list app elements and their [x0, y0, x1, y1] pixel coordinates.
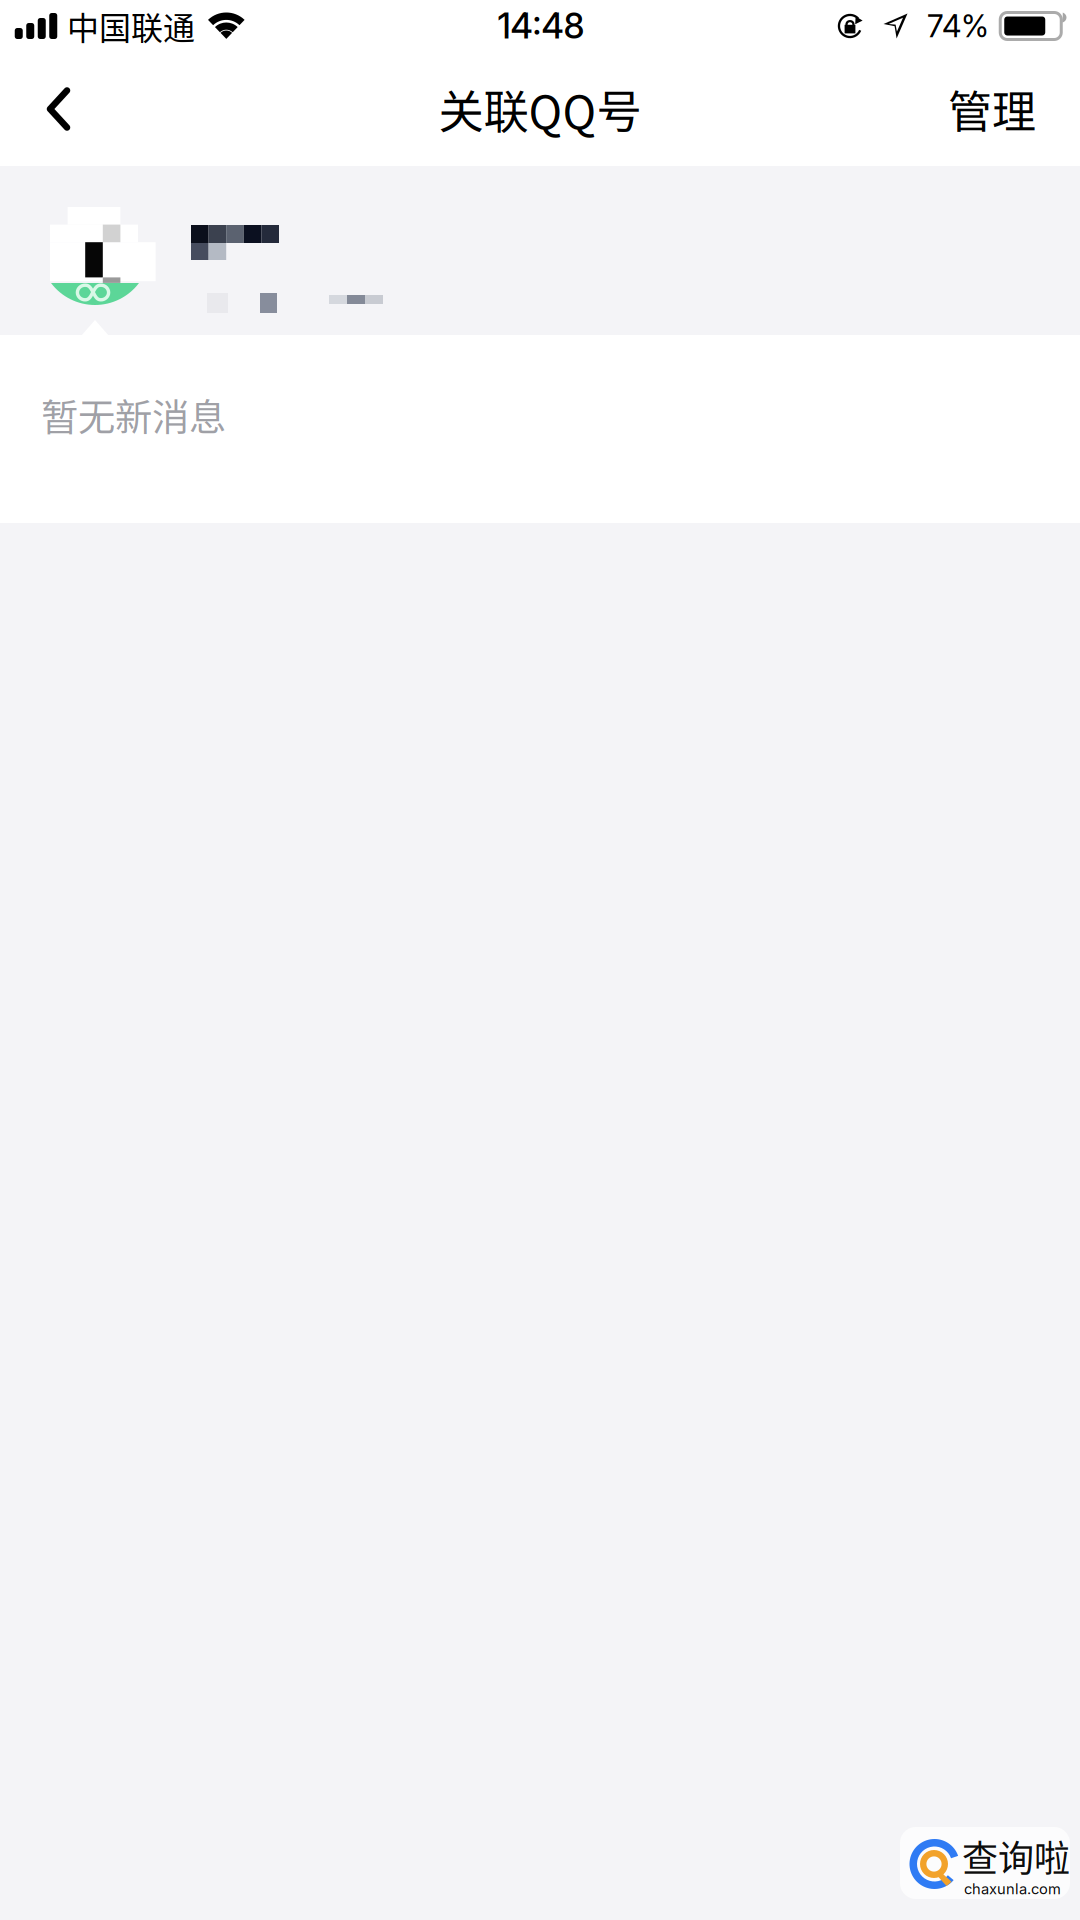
button[interactable] — [0, 166, 1080, 335]
button[interactable]: 暂无新消息 — [0, 335, 1080, 523]
staticText: 14:48 — [497, 5, 584, 47]
staticText: 查询啦 — [962, 1830, 1070, 1882]
staticText: 中国联通 — [67, 3, 195, 49]
button[interactable]: 管理 — [914, 54, 1080, 164]
staticText: 74% — [927, 7, 989, 44]
button[interactable]: 返回 — [0, 54, 104, 164]
staticText: 关联QQ号 — [438, 76, 641, 142]
staticText: 暂无新消息 — [41, 388, 226, 442]
staticText: 管理 — [948, 77, 1036, 141]
staticText: chaxunla.com — [964, 1880, 1061, 1898]
